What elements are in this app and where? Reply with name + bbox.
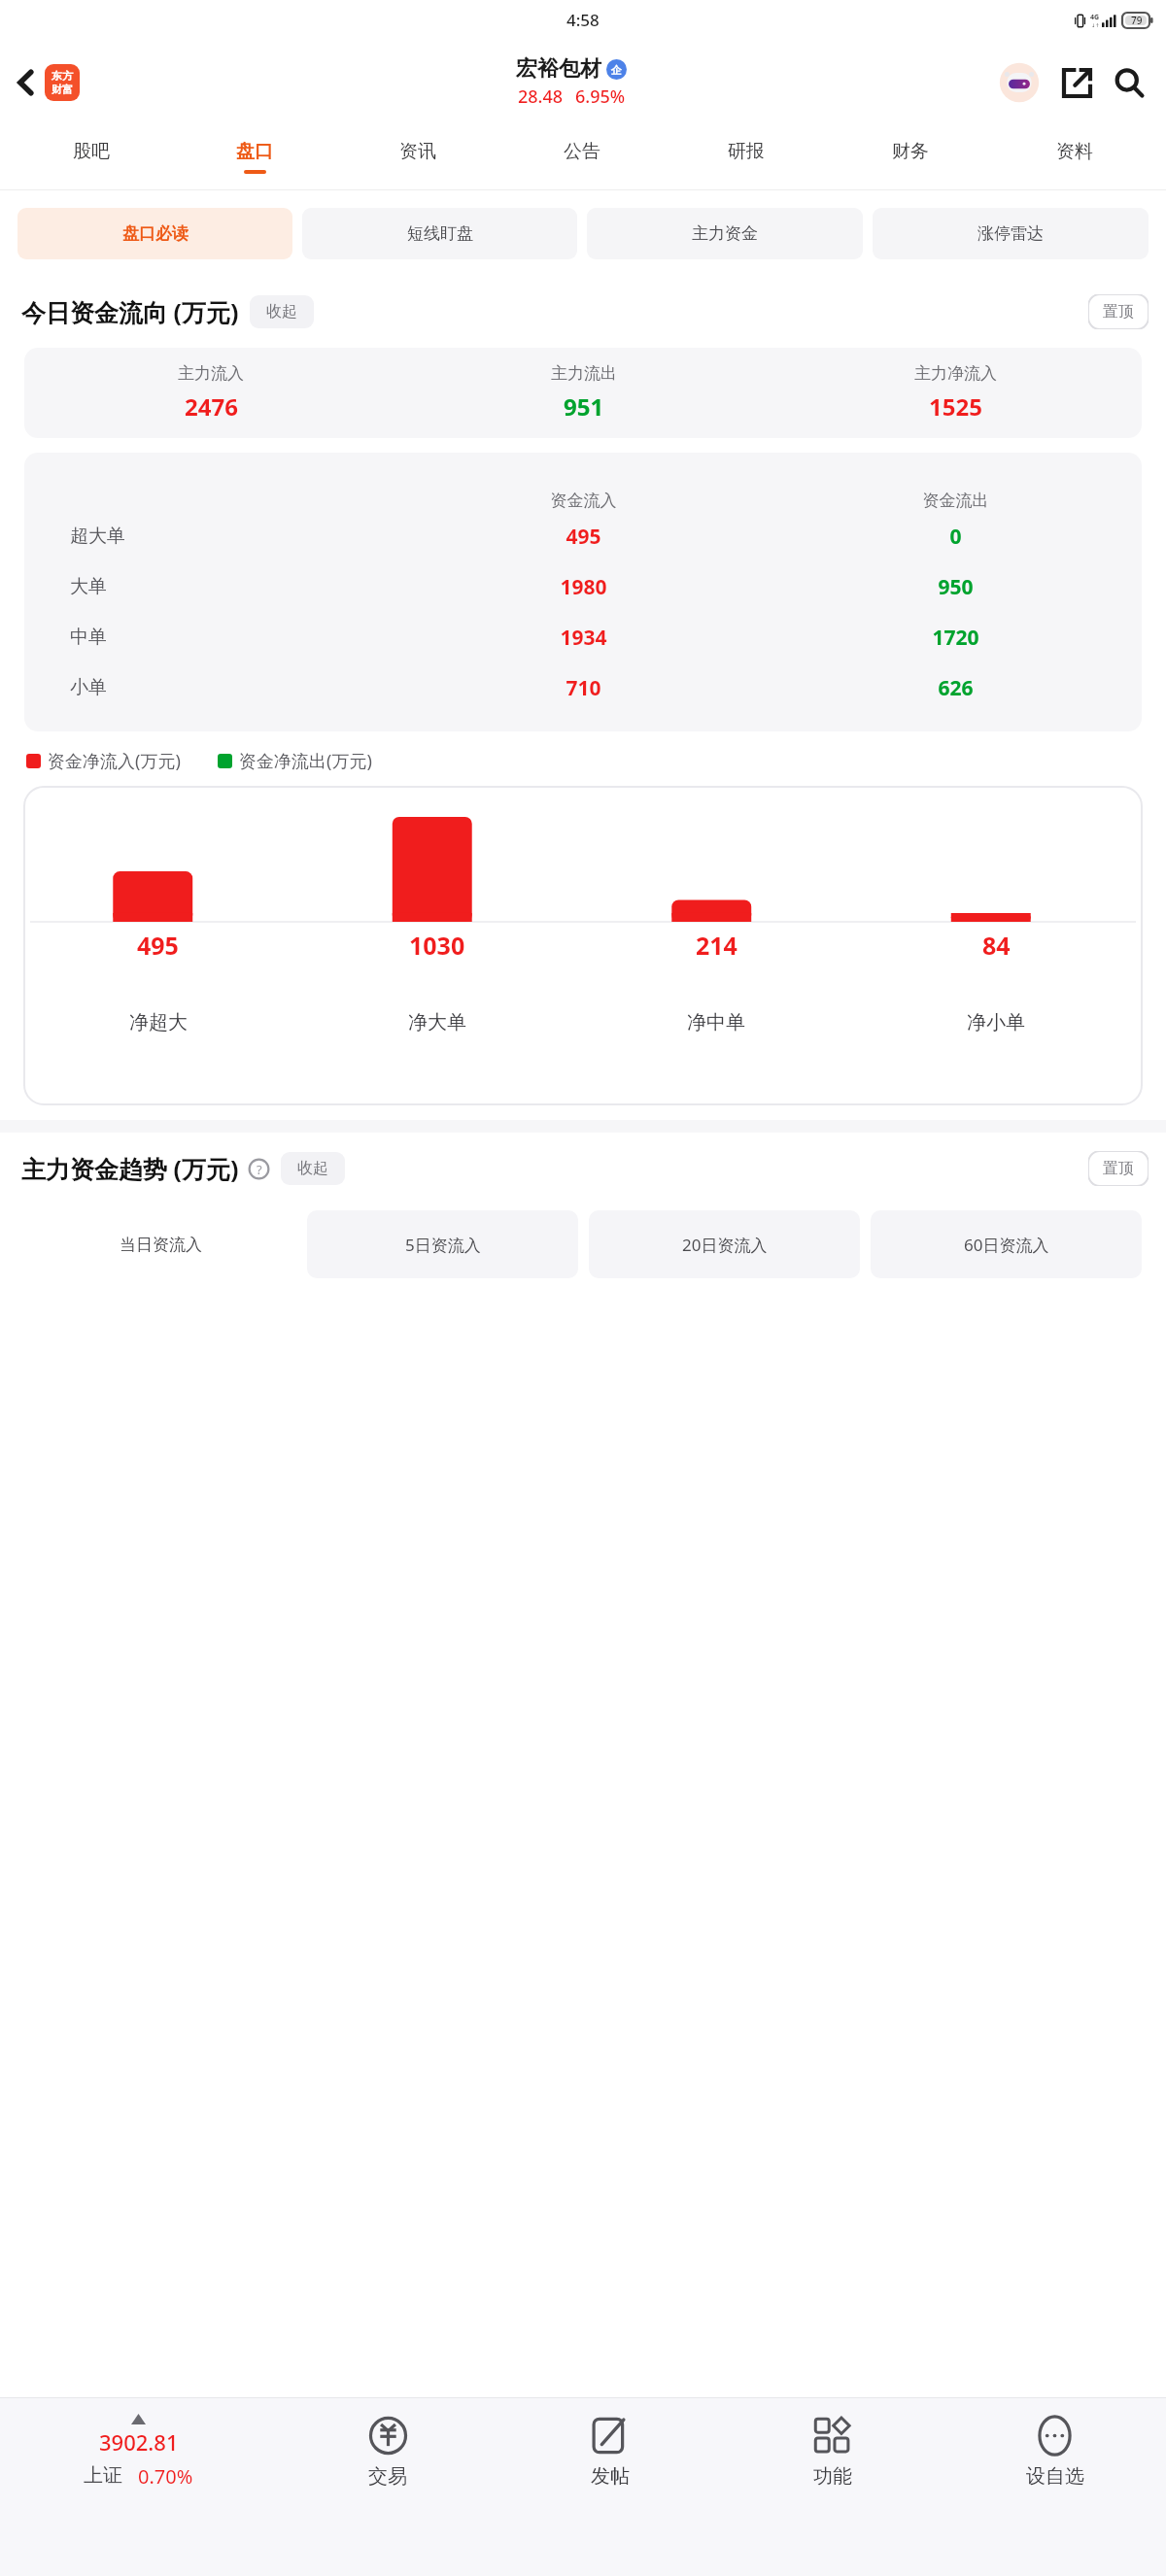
staticText: 净超大 xyxy=(129,1010,188,1034)
staticText: 6.95% xyxy=(575,85,626,109)
staticText: 4:58 xyxy=(566,9,600,31)
button[interactable]: 股吧 xyxy=(10,123,173,189)
button[interactable]: 60日资流入 xyxy=(871,1210,1142,1278)
staticText: 东方 xyxy=(51,69,73,83)
staticText: 中单 xyxy=(70,626,397,649)
staticText: 收起 xyxy=(266,302,297,322)
staticText: 0.70% xyxy=(138,2463,193,2490)
staticText: 研报 xyxy=(728,140,765,163)
button[interactable]: 财务 xyxy=(828,123,992,189)
staticText: 3902.81 xyxy=(99,2427,179,2457)
button[interactable]: 公告 xyxy=(499,123,664,189)
button[interactable]: 发帖 xyxy=(498,2398,721,2576)
staticText: 超大单 xyxy=(70,525,397,548)
staticText: 0 xyxy=(770,523,1142,551)
staticText: 大单 xyxy=(70,575,397,598)
staticText: 950 xyxy=(770,573,1142,601)
staticText: 交易 xyxy=(368,2464,407,2489)
staticText: 495 xyxy=(397,523,770,551)
staticText: ↓↑ xyxy=(1091,22,1100,28)
button[interactable]: 盘口必读 xyxy=(17,208,292,259)
button[interactable]: 5日资流入 xyxy=(307,1210,578,1278)
staticText: 资金流出 xyxy=(770,491,1142,511)
button[interactable]: 设自选 xyxy=(943,2398,1166,2576)
staticText: 置顶 xyxy=(1103,302,1134,322)
staticText: 1720 xyxy=(770,624,1142,652)
button[interactable]: AI assistant xyxy=(997,60,1042,105)
button[interactable]: 3902.81 xyxy=(0,2398,277,2576)
staticText: 84 xyxy=(982,929,1011,962)
staticText: 主力流入 xyxy=(178,363,244,384)
staticText: 宏裕包材 xyxy=(516,55,601,83)
staticText: 财富 xyxy=(51,83,73,96)
button[interactable]: Share xyxy=(1055,61,1098,104)
staticText: 1980 xyxy=(397,573,770,601)
button[interactable]: 置顶 xyxy=(1088,1151,1149,1186)
staticText: 设自选 xyxy=(1026,2464,1084,2489)
button[interactable]: 交易 xyxy=(277,2398,498,2576)
staticText: 涨停雷达 xyxy=(977,223,1044,244)
staticText: 置顶 xyxy=(1103,1159,1134,1178)
staticText: 企 xyxy=(611,63,622,77)
button[interactable]: 资讯 xyxy=(336,123,499,189)
button[interactable]: 收起 xyxy=(281,1152,345,1185)
staticText: 79 xyxy=(1131,14,1143,27)
staticText: 净小单 xyxy=(967,1010,1025,1034)
staticText: 495 xyxy=(137,929,179,962)
staticText: 710 xyxy=(397,674,770,702)
staticText: 收起 xyxy=(297,1159,328,1178)
button[interactable]: Help xyxy=(248,1158,270,1180)
staticText: 1525 xyxy=(929,390,982,423)
button[interactable]: 功能 xyxy=(721,2398,943,2576)
button[interactable]: 盘口 xyxy=(173,123,336,189)
staticText: 28.48 xyxy=(518,85,564,109)
staticText: 20日资流入 xyxy=(682,1234,768,1256)
staticText: 资料 xyxy=(1056,140,1093,163)
staticText: 功能 xyxy=(813,2464,852,2489)
button[interactable]: 收起 xyxy=(250,295,314,328)
button[interactable]: Back xyxy=(10,58,86,107)
staticText: 1030 xyxy=(409,929,465,962)
staticText: 1934 xyxy=(397,624,770,652)
staticText: 盘口 xyxy=(236,140,273,163)
staticText: 发帖 xyxy=(591,2464,630,2489)
staticText: 净中单 xyxy=(687,1010,745,1034)
staticText: 5日资流入 xyxy=(405,1234,481,1256)
staticText: 4G xyxy=(1090,13,1100,22)
staticText: 主力净流入 xyxy=(914,363,997,384)
button[interactable]: 当日资流入 xyxy=(24,1210,296,1278)
staticText: 净大单 xyxy=(408,1010,466,1034)
staticText: 资金净流入(万元) xyxy=(48,749,181,773)
staticText: 60日资流入 xyxy=(964,1234,1049,1256)
button[interactable]: Search xyxy=(1108,61,1150,104)
staticText: 主力流出 xyxy=(551,363,617,384)
staticText: 951 xyxy=(564,390,604,423)
staticText: 主力资金 xyxy=(692,223,758,244)
button[interactable]: 20日资流入 xyxy=(589,1210,860,1278)
button[interactable]: 研报 xyxy=(664,123,828,189)
button[interactable]: 资料 xyxy=(992,123,1156,189)
staticText: 财务 xyxy=(892,140,929,163)
staticText: 股吧 xyxy=(73,140,110,163)
staticText: 短线盯盘 xyxy=(407,223,473,244)
staticText: 资金流入 xyxy=(397,491,770,511)
button[interactable]: 主力资金 xyxy=(587,208,863,259)
button[interactable]: 涨停雷达 xyxy=(873,208,1149,259)
button[interactable]: 置顶 xyxy=(1088,294,1149,329)
staticText: 主力资金趋势 (万元) xyxy=(21,1152,239,1185)
staticText: 2476 xyxy=(185,390,238,423)
staticText: 上证 xyxy=(84,2463,122,2488)
staticText: 盘口必读 xyxy=(122,223,189,244)
staticText: 小单 xyxy=(70,676,397,699)
staticText: ? xyxy=(257,1161,262,1178)
staticText: 214 xyxy=(696,929,737,962)
staticText: 626 xyxy=(770,674,1142,702)
staticText: 公告 xyxy=(564,140,600,163)
staticText: 当日资流入 xyxy=(120,1235,202,1255)
staticText: 资金净流出(万元) xyxy=(239,749,372,773)
button[interactable]: 短线盯盘 xyxy=(302,208,577,259)
staticText: 资讯 xyxy=(399,140,436,163)
staticText: 今日资金流向 (万元) xyxy=(21,295,239,328)
